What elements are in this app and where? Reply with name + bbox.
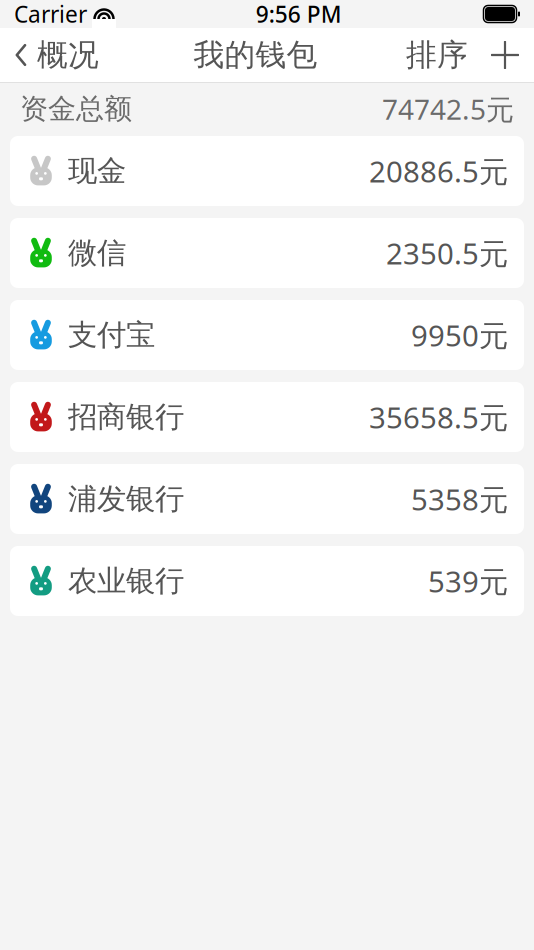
staticText: 20886.5元: [369, 151, 508, 190]
staticText: 现金: [68, 153, 126, 189]
staticText: 招商银行: [68, 399, 184, 435]
button[interactable]: 添加账户: [476, 28, 534, 82]
staticText: 9:56 PM: [256, 0, 342, 29]
button[interactable]: 现金: [10, 136, 524, 206]
staticText: 排序: [406, 36, 468, 74]
staticText: 支付宝: [68, 317, 155, 353]
staticText: 微信: [68, 235, 126, 271]
staticText: 概况: [37, 36, 99, 74]
staticText: 35658.5元: [369, 397, 508, 436]
button[interactable]: 概况: [0, 28, 113, 82]
staticText: 74742.5元: [382, 90, 514, 128]
staticText: 9950元: [411, 315, 508, 354]
staticText: 2350.5元: [386, 233, 508, 272]
staticText: 农业银行: [68, 563, 184, 599]
staticText: 资金总额: [20, 92, 132, 126]
button[interactable]: 排序: [398, 28, 476, 82]
staticText: 539元: [428, 561, 508, 600]
staticText: Carrier: [14, 0, 87, 29]
staticText: 浦发银行: [68, 481, 184, 517]
button[interactable]: 支付宝: [10, 300, 524, 370]
button[interactable]: 微信: [10, 218, 524, 288]
button[interactable]: 招商银行: [10, 382, 524, 452]
button[interactable]: 农业银行: [10, 546, 524, 616]
button[interactable]: 浦发银行: [10, 464, 524, 534]
staticText: 我的钱包: [193, 36, 317, 74]
staticText: 5358元: [411, 479, 508, 518]
